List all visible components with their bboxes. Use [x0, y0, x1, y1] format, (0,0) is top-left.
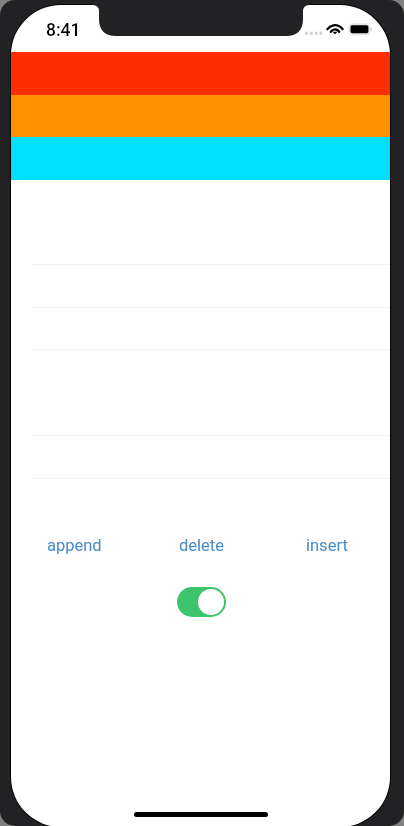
button[interactable]: delete: [138, 528, 264, 562]
staticText: 8:41: [46, 20, 81, 41]
staticText: append: [47, 536, 102, 555]
button[interactable]: append: [11, 528, 138, 562]
button[interactable]: Toggle on: [177, 587, 226, 617]
staticText: insert: [306, 536, 348, 555]
staticText: delete: [179, 536, 224, 555]
button[interactable]: insert: [264, 528, 390, 562]
